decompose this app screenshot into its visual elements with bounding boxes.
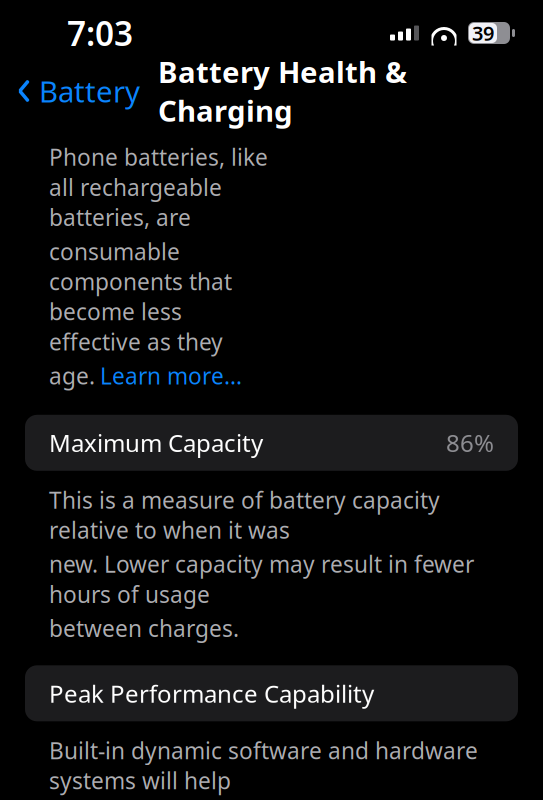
staticText: consumable components that become less e… <box>49 236 232 357</box>
staticText: between charges. <box>49 613 239 643</box>
button[interactable]: Learn more... <box>100 361 242 391</box>
staticText: 39 <box>472 20 494 46</box>
staticText: Built-in dynamic software and hardware s… <box>49 735 478 795</box>
staticText: Peak Performance Capability <box>49 677 374 709</box>
staticText: Phone batteries, like all rechargeable b… <box>49 142 268 232</box>
staticText: 86% <box>446 427 494 459</box>
staticText: This is a measure of battery capacity re… <box>49 485 440 545</box>
staticText: new. Lower capacity may result in fewer … <box>49 549 474 609</box>
staticText: Maximum Capacity <box>49 427 263 459</box>
staticText: Battery <box>39 71 140 110</box>
staticText: Learn more... <box>100 361 242 391</box>
button[interactable]: Battery <box>0 65 140 116</box>
button[interactable]: Maximum Capacity <box>25 415 518 471</box>
button[interactable]: Peak Performance Capability <box>25 665 518 721</box>
staticText: 7:03 <box>67 11 133 55</box>
staticText: age. <box>49 361 95 391</box>
staticText: Battery Health & Charging <box>158 52 407 130</box>
